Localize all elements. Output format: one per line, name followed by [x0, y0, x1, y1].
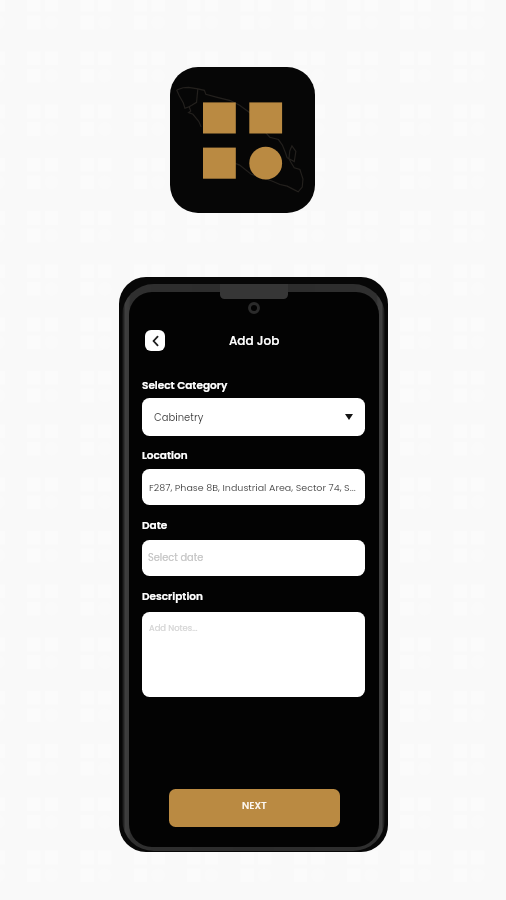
staticText: Location [142, 448, 188, 463]
staticText: Date [142, 518, 168, 533]
staticText: Add Notes... [149, 622, 198, 634]
button[interactable]: Cabinetry [142, 398, 365, 436]
button[interactable]: NEXT [169, 789, 340, 827]
button[interactable]: Select date [142, 540, 365, 576]
button[interactable]: Add Notes... [142, 612, 365, 697]
staticText: Add Job [229, 332, 280, 349]
button[interactable]: F287, Phase 8B, Industrial Area, Sector … [142, 469, 365, 505]
button[interactable]: Back [145, 330, 165, 351]
staticText: Select date [148, 551, 204, 565]
staticText: NEXT [242, 798, 267, 812]
button[interactable]: Openspace app icon [170, 67, 315, 213]
staticText: Select Category [142, 378, 228, 393]
staticText: Cabinetry [154, 410, 204, 424]
staticText: F287, Phase 8B, Industrial Area, Sector … [149, 481, 356, 494]
staticText: Description [142, 589, 203, 604]
